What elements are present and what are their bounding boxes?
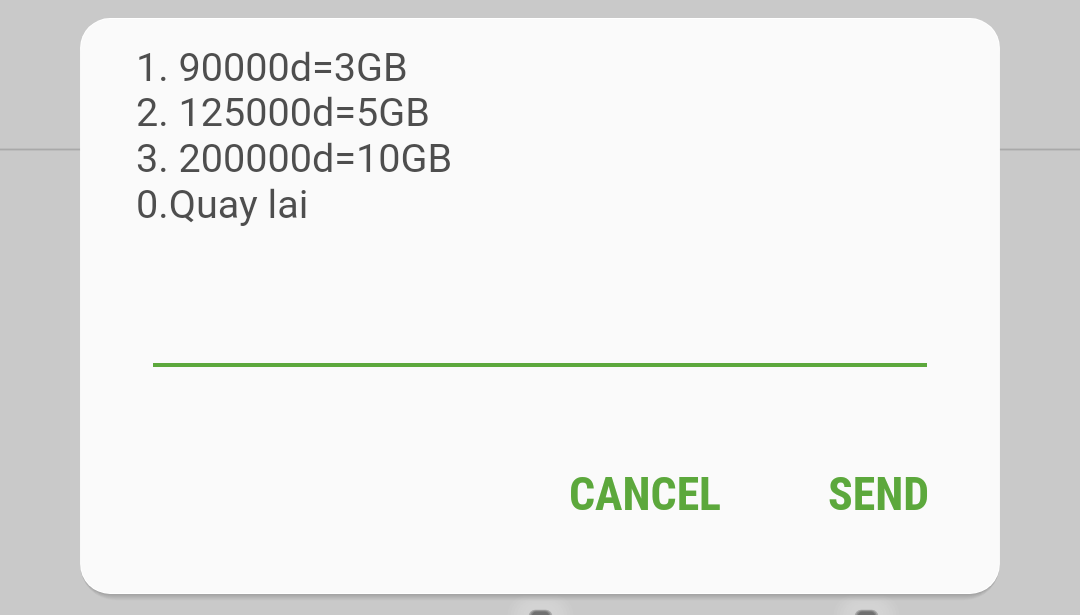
staticText: CANCEL bbox=[569, 468, 722, 522]
button[interactable]: SEND bbox=[812, 458, 946, 532]
staticText: SEND bbox=[828, 468, 930, 522]
staticText: 1. 90000d=3GB 2. 125000d=5GB 3. 200000d=… bbox=[136, 44, 453, 228]
button[interactable]: CANCEL bbox=[553, 458, 738, 532]
button[interactable]: Reply input field bbox=[153, 305, 927, 367]
